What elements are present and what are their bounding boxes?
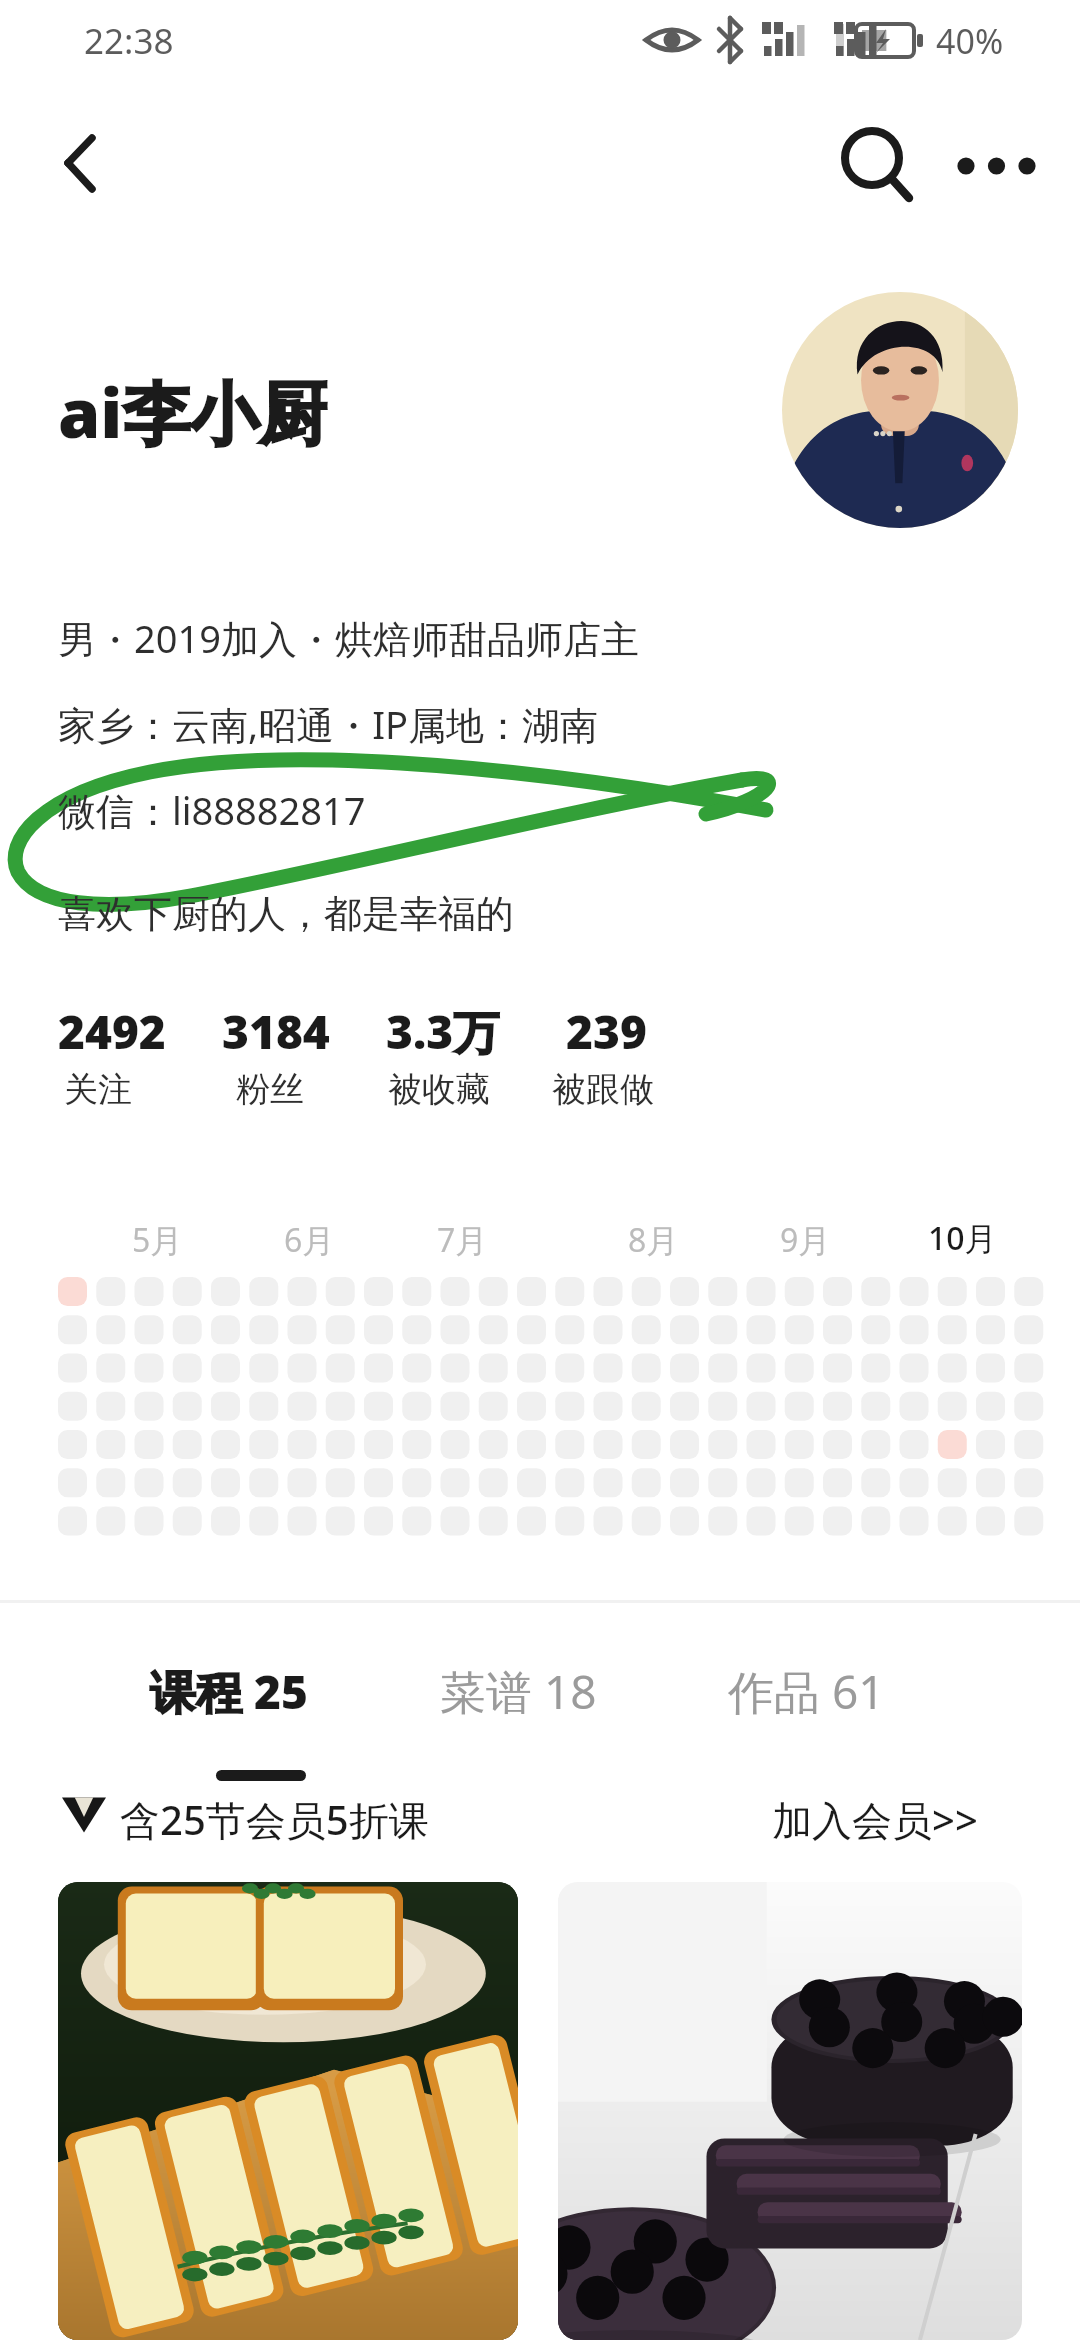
button[interactable]: Charcoal cake course: [558, 1882, 1022, 2340]
staticText: 菜谱 18: [440, 1660, 597, 1723]
staticText: 40%: [936, 18, 1004, 64]
button[interactable]: Back: [22, 112, 122, 212]
staticText: 微信：li88882817: [58, 784, 366, 836]
staticText: 7月: [437, 1218, 488, 1262]
staticText: 被跟做: [552, 1068, 654, 1111]
staticText: 2492: [58, 1000, 166, 1063]
staticText: 10月: [928, 1216, 997, 1260]
staticText: 3184: [222, 1000, 330, 1063]
staticText: 家乡：云南,昭通・IP属地：湖南: [58, 698, 599, 750]
staticText: 粉丝: [236, 1068, 304, 1111]
staticText: 被收藏: [388, 1068, 490, 1111]
staticText: 含25节会员5折课: [120, 1792, 429, 1847]
button[interactable]: More options: [930, 110, 1040, 220]
staticText: 3.3万: [386, 1000, 500, 1063]
staticText: 5月: [132, 1218, 183, 1262]
staticText: ai李小厨: [58, 365, 327, 458]
staticText: 喜欢下厨的人，都是幸福的: [58, 890, 514, 938]
staticText: 加入会员>>: [772, 1792, 978, 1847]
staticText: 8月: [628, 1218, 679, 1262]
button[interactable]: 作品 61: [728, 1660, 885, 1723]
staticText: 239: [566, 1000, 647, 1063]
staticText: 9月: [780, 1218, 831, 1262]
button[interactable]: Search: [822, 108, 922, 208]
button[interactable]: Profile photo: [782, 292, 1018, 528]
button[interactable]: 含25节会员5折课: [120, 1792, 429, 1847]
button[interactable]: Bread baking course: [58, 1882, 518, 2340]
staticText: 男・2019加入・烘焙师甜品师店主: [58, 612, 639, 664]
staticText: 关注: [64, 1068, 132, 1111]
button[interactable]: 菜谱 18: [440, 1660, 597, 1723]
button[interactable]: 加入会员>>: [772, 1792, 978, 1847]
staticText: 课程 25: [150, 1660, 308, 1723]
button[interactable]: 课程 25: [150, 1660, 308, 1723]
staticText: 作品 61: [728, 1660, 885, 1723]
staticText: 22:38: [84, 17, 174, 65]
staticText: 6月: [284, 1218, 335, 1262]
